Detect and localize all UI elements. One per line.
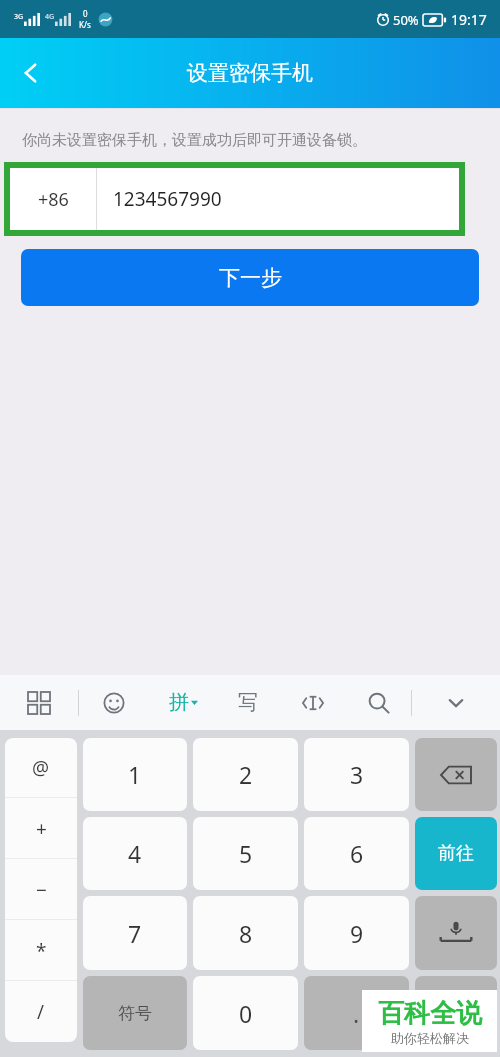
staticText: @ xyxy=(32,755,50,781)
button[interactable]: 1 xyxy=(83,738,187,811)
button[interactable]: 8 xyxy=(193,896,298,970)
staticText: 1234567990 xyxy=(113,186,222,212)
staticText: 写 xyxy=(238,690,258,715)
button[interactable]: 2 xyxy=(193,738,298,811)
staticText: 0 xyxy=(83,8,88,19)
button[interactable]: 0 xyxy=(193,976,298,1050)
staticText: 19:17 xyxy=(451,10,487,29)
button[interactable]: 下一步 xyxy=(21,249,479,306)
staticText: 助你轻松解决 xyxy=(391,1030,469,1046)
staticText: 8 xyxy=(239,918,253,949)
staticText: K/s xyxy=(79,19,91,30)
staticText: 设置密保手机 xyxy=(187,60,313,86)
button[interactable]: Hide keyboard xyxy=(412,675,500,730)
button[interactable]: 7 xyxy=(83,896,187,970)
staticText: 5 xyxy=(239,838,253,869)
button[interactable]: Keyboard layouts xyxy=(0,675,78,730)
staticText: / xyxy=(37,999,45,1025)
button[interactable]: Backspace xyxy=(415,738,497,811)
button[interactable]: 6 xyxy=(304,817,409,890)
button[interactable]: Back xyxy=(0,38,62,108)
staticText: 你尚未设置密保手机，设置成功后即可开通设备锁。 xyxy=(22,131,490,150)
staticText: 7 xyxy=(128,918,142,949)
button[interactable]: 写 xyxy=(217,675,279,730)
button[interactable]: 4 xyxy=(83,817,187,890)
staticText: 3G xyxy=(14,12,24,22)
staticText: 9 xyxy=(350,918,364,949)
button[interactable]: 9 xyxy=(304,896,409,970)
button[interactable]: / xyxy=(5,981,77,1042)
button[interactable]: 符号 xyxy=(83,976,187,1050)
staticText: 4 xyxy=(128,838,142,869)
button[interactable]: 拼 xyxy=(149,675,217,730)
staticText: 前往 xyxy=(438,842,474,865)
staticText: 1 xyxy=(128,759,142,790)
button[interactable]: 前往 xyxy=(415,817,497,890)
staticText: 2 xyxy=(239,759,253,790)
staticText: 百科全说 xyxy=(378,997,482,1030)
staticText: 下一步 xyxy=(219,265,282,291)
staticText: 3 xyxy=(350,759,364,790)
staticText: 0 xyxy=(239,998,253,1029)
staticText: 符号 xyxy=(118,1003,152,1024)
button[interactable]: + xyxy=(5,798,77,859)
button[interactable]: * xyxy=(5,920,77,981)
button[interactable]: Emoji xyxy=(79,675,149,730)
staticText: 50% xyxy=(393,11,419,29)
staticText: 拼 xyxy=(169,690,189,715)
staticText: + xyxy=(36,816,47,842)
button[interactable]: Space and voice input xyxy=(415,896,497,970)
staticText: +86 xyxy=(38,187,69,212)
staticText: 6 xyxy=(350,838,364,869)
button[interactable]: +86 xyxy=(10,168,459,230)
staticText: * xyxy=(36,938,47,964)
button[interactable]: − xyxy=(5,859,77,920)
staticText: . xyxy=(353,998,360,1029)
button[interactable]: @ xyxy=(5,738,77,798)
button[interactable]: 3 xyxy=(304,738,409,811)
button[interactable]: Move cursor xyxy=(279,675,347,730)
staticText: 4G xyxy=(45,12,55,22)
staticText: − xyxy=(36,877,47,903)
button[interactable]: 5 xyxy=(193,817,298,890)
button[interactable]: Search xyxy=(347,675,411,730)
button[interactable]: . xyxy=(304,976,409,1050)
button[interactable]: More xyxy=(415,976,497,1050)
